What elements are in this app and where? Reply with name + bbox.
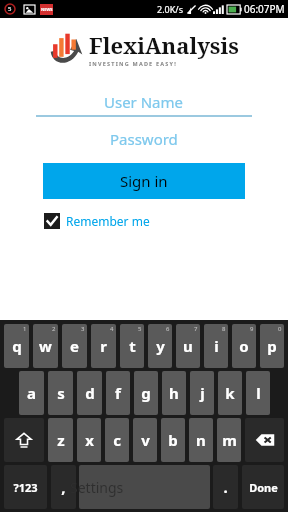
staticText: w [39,336,52,356]
button[interactable]: Space [79,465,210,509]
staticText: ?123 [13,480,38,495]
staticText: a [27,383,36,403]
staticText: m [222,430,237,450]
staticText: User Name [104,92,184,112]
staticText: r [100,336,107,356]
button[interactable]: j [190,371,214,415]
button[interactable]: Password [36,127,252,151]
staticText: FlexiAnalysis [89,30,239,60]
staticText: l [256,383,261,403]
button[interactable]: Sign in [43,163,245,199]
button[interactable]: n [189,418,213,462]
button[interactable]: Remember me [44,213,150,229]
staticText: u [183,336,193,356]
button[interactable]: u [176,324,200,368]
button[interactable]: x [77,418,101,462]
button[interactable]: q [4,324,29,368]
staticText: Sign in [120,171,168,191]
staticText: h [169,383,179,403]
staticText: 3 [81,325,85,333]
staticText: , [61,477,66,497]
button[interactable]: ?123 [4,465,47,509]
button[interactable]: . [213,465,238,509]
staticText: Done [249,480,278,495]
button[interactable]: User Name [36,89,252,115]
button[interactable]: Shift [4,418,44,462]
button[interactable]: , [51,465,76,509]
staticText: v [141,430,150,450]
staticText: Settings [70,478,124,497]
button[interactable]: g [134,371,158,415]
button[interactable]: f [106,371,130,415]
staticText: y [156,336,165,356]
staticText: 8 [222,325,226,333]
staticText: i [214,336,219,356]
staticText: 2 [52,325,56,333]
staticText: NEWS [41,7,53,12]
button[interactable]: b [161,418,185,462]
button[interactable]: w [33,324,58,368]
staticText: n [196,430,206,450]
staticText: 4 [110,325,114,333]
button[interactable]: m [217,418,241,462]
staticText: 1 [23,325,27,333]
staticText: 5 [138,325,142,333]
staticText: 9 [250,325,254,333]
staticText: . [223,477,228,497]
button[interactable]: v [133,418,157,462]
staticText: 2.0K/s [157,3,183,15]
staticText: e [70,336,79,356]
button[interactable]: c [105,418,129,462]
staticText: k [225,383,235,403]
button[interactable]: z [48,418,73,462]
staticText: j [200,383,205,403]
button[interactable]: t [120,324,144,368]
button[interactable]: r [91,324,116,368]
button[interactable]: i [204,324,228,368]
staticText: g [141,383,151,403]
staticText: s [57,383,65,403]
button[interactable]: e [62,324,87,368]
staticText: t [129,336,136,356]
button[interactable]: k [218,371,242,415]
staticText: 7 [194,325,198,333]
staticText: b [168,430,178,450]
button[interactable]: l [246,371,270,415]
button[interactable]: y [148,324,172,368]
button[interactable]: Done [242,465,284,509]
button[interactable]: a [19,371,44,415]
button[interactable]: d [77,371,102,415]
button[interactable]: Backspace [245,418,284,462]
staticText: 06:07PM [244,2,285,16]
staticText: 6 [166,325,170,333]
staticText: d [85,383,95,403]
staticText: x [85,430,94,450]
button[interactable]: p [260,324,284,368]
staticText: 0 [278,325,282,333]
staticText: p [267,336,277,356]
staticText: Remember me [66,213,150,229]
staticText: q [12,336,22,356]
staticText: f [115,383,121,403]
staticText: z [57,430,65,450]
staticText: c [113,430,121,450]
button[interactable]: s [48,371,73,415]
staticText: INVESTING MADE EASY! [89,60,177,67]
button[interactable]: o [232,324,256,368]
staticText: o [239,336,249,356]
button[interactable]: h [162,371,186,415]
staticText: Password [110,129,178,149]
staticText: 5 [8,5,12,13]
